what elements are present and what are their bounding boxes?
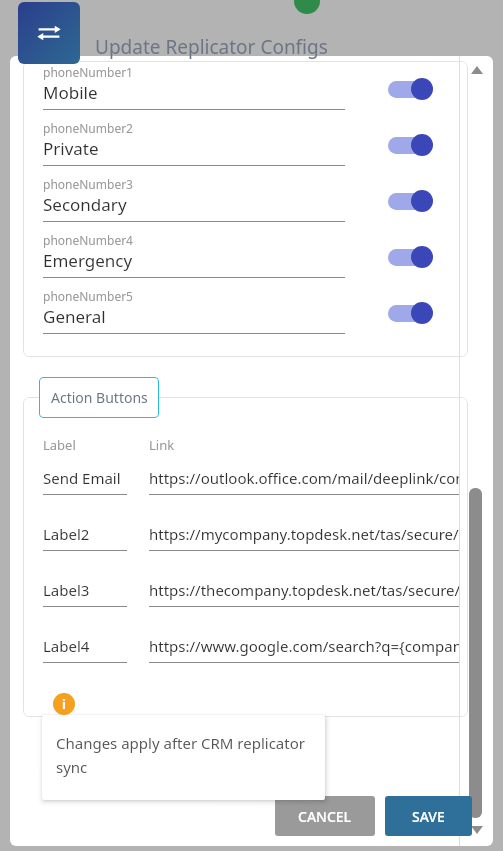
- button[interactable]: Label2: [43, 522, 463, 570]
- button[interactable]: Send Email: [43, 466, 463, 514]
- staticText: phoneNumber1: [43, 64, 133, 80]
- button[interactable]: phoneNumber5: [43, 288, 463, 342]
- staticText: Mobile: [43, 81, 98, 104]
- button[interactable]: Label3: [43, 578, 463, 626]
- staticText: Link: [149, 436, 175, 454]
- staticText: https://mycompany.topdesk.net/tas/secure…: [149, 524, 459, 544]
- staticText: https://outlook.office.com/mail/deeplink…: [149, 468, 459, 488]
- staticText: Send Email: [43, 468, 121, 488]
- button[interactable]: Action Buttons: [39, 377, 159, 418]
- button[interactable]: phoneNumber3: [43, 176, 463, 230]
- staticText: phoneNumber5: [43, 288, 133, 304]
- button[interactable]: CANCEL: [275, 796, 375, 836]
- button[interactable]: Label4: [43, 634, 463, 682]
- staticText: i: [62, 695, 66, 713]
- staticText: SAVE: [412, 807, 445, 826]
- button[interactable]: Replicator: [18, 2, 80, 64]
- staticText: Emergency: [43, 249, 133, 272]
- staticText: phoneNumber2: [43, 120, 133, 136]
- staticText: phoneNumber3: [43, 176, 133, 192]
- button[interactable]: phoneNumber1: [43, 64, 463, 118]
- staticText: https://www.google.com/search?q={company…: [149, 636, 459, 656]
- staticText: phoneNumber4: [43, 232, 133, 248]
- staticText: Changes apply after CRM replicator sync: [56, 733, 311, 777]
- button[interactable]: SAVE: [385, 796, 472, 836]
- staticText: CANCEL: [298, 807, 352, 826]
- staticText: Label2: [43, 524, 90, 544]
- staticText: Action Buttons: [51, 388, 148, 407]
- staticText: Label4: [43, 636, 90, 656]
- staticText: Label: [43, 436, 76, 454]
- staticText: General: [43, 305, 106, 328]
- staticText: https://thecompany.topdesk.net/tas/secur…: [149, 580, 459, 600]
- button[interactable]: phoneNumber4: [43, 232, 463, 286]
- staticText: Secondary: [43, 193, 127, 216]
- staticText: Label3: [43, 580, 90, 600]
- staticText: Private: [43, 137, 99, 160]
- staticText: Update Replicator Configs: [95, 34, 328, 60]
- button[interactable]: Information: [53, 693, 75, 715]
- button[interactable]: phoneNumber2: [43, 120, 463, 174]
